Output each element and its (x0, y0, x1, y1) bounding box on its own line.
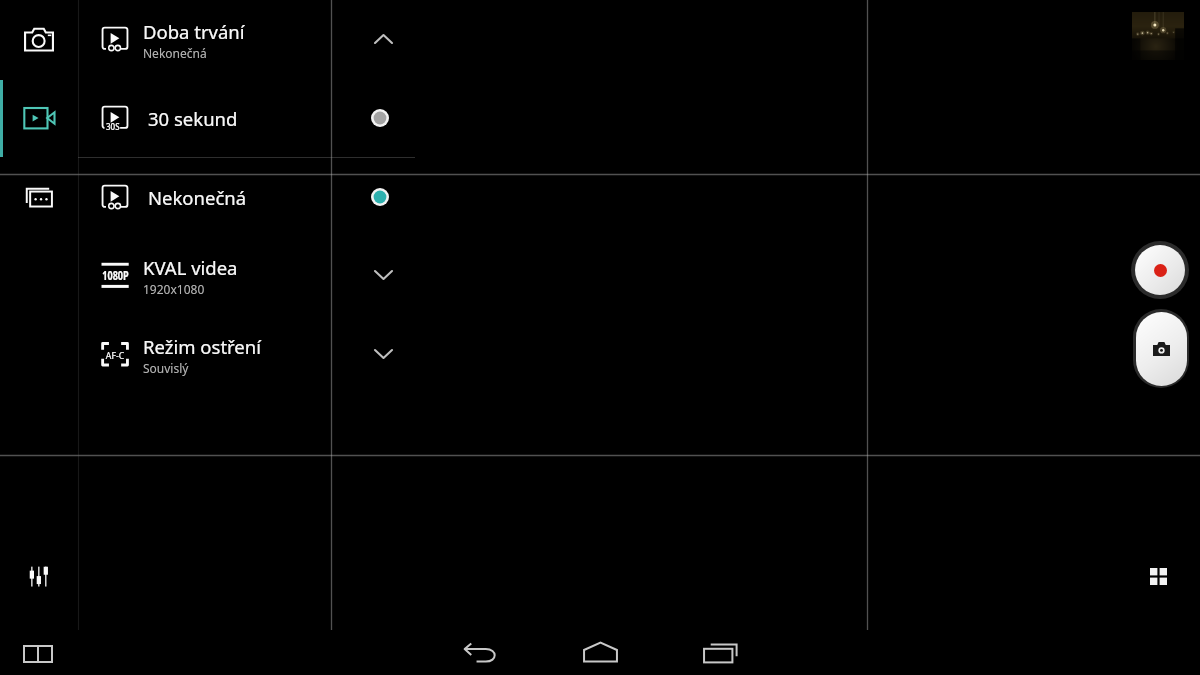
button[interactable]: Open gallery (1132, 12, 1184, 60)
button[interactable]: Split screen (15, 631, 60, 675)
button[interactable]: 1080P (78, 236, 415, 314)
staticText: AF-C (106, 349, 125, 362)
button[interactable]: Expand (369, 344, 397, 364)
button[interactable]: Recents (680, 631, 760, 675)
button[interactable]: Photo mode (0, 6, 78, 72)
staticText: Nekonečná (143, 45, 207, 61)
staticText: Režim ostření (143, 334, 261, 359)
button[interactable]: Video mode (0, 79, 78, 157)
button[interactable]: Nekonečná (78, 158, 415, 236)
staticText: KVAL videa (143, 255, 238, 280)
button[interactable]: Back (440, 631, 520, 675)
staticText: Souvislý (143, 360, 189, 376)
button[interactable]: Expand (369, 265, 397, 285)
button[interactable]: Take photo (1133, 309, 1189, 388)
staticText: 1080P (102, 267, 129, 283)
button[interactable]: Collapse (369, 29, 397, 49)
button[interactable]: Doba trvání (78, 0, 415, 78)
button[interactable]: Record video (1131, 241, 1189, 299)
staticText: Doba trvání (143, 19, 245, 44)
button[interactable]: More modes (0, 164, 78, 230)
button[interactable]: AF-C (78, 315, 415, 393)
staticText: Nekonečná (148, 185, 247, 210)
button[interactable]: Grid lines (1136, 554, 1180, 598)
button[interactable]: Select option (367, 105, 393, 131)
staticText: 1920x1080 (143, 281, 205, 297)
button[interactable]: Select option (367, 184, 393, 210)
button[interactable]: Settings (0, 546, 78, 606)
staticText: 30 sekund (148, 106, 238, 131)
button[interactable]: 30S (78, 79, 415, 157)
staticText: 30S (106, 121, 120, 132)
button[interactable]: Home (560, 630, 640, 674)
